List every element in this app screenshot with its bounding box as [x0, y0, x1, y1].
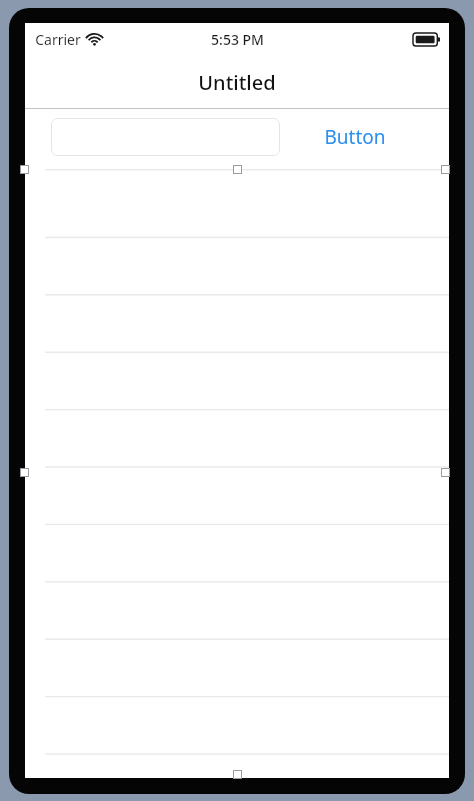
other: Battery full — [413, 33, 440, 46]
button[interactable]: Button — [311, 116, 399, 158]
button[interactable]: Text field — [51, 118, 280, 156]
staticText: Untitled — [198, 69, 276, 96]
staticText: 5:53 PM — [211, 30, 264, 49]
other: Wi-Fi — [87, 34, 102, 46]
button[interactable]: Row — [25, 465, 449, 522]
staticText: Button — [324, 124, 386, 150]
staticText: Carrier — [35, 30, 81, 49]
button[interactable]: Row — [25, 750, 449, 778]
